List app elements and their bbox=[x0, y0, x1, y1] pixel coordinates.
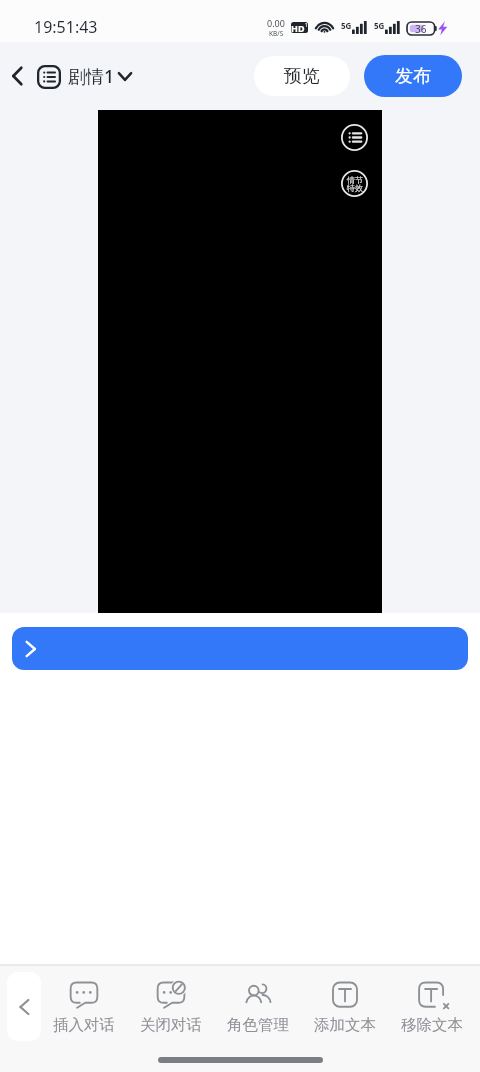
staticText: 发布 bbox=[395, 65, 431, 88]
button[interactable]: 发布 bbox=[364, 55, 462, 97]
button[interactable]: Next scene bbox=[12, 627, 468, 670]
button[interactable]: 关闭对话 bbox=[127, 982, 214, 1035]
staticText: 移除文本 bbox=[401, 1015, 463, 1035]
staticText: 情节 特效 bbox=[347, 175, 363, 193]
button[interactable]: 移除文本 bbox=[388, 982, 475, 1035]
staticText: 0.00 bbox=[267, 17, 285, 29]
button[interactable]: Scene list bbox=[341, 124, 368, 151]
staticText: 36 bbox=[415, 22, 427, 35]
button[interactable]: 剧情1 bbox=[37, 64, 132, 89]
button[interactable]: 预览 bbox=[254, 56, 350, 96]
button[interactable]: Back bbox=[3, 62, 31, 90]
staticText: 5G bbox=[374, 20, 385, 31]
staticText: 5G bbox=[341, 20, 352, 31]
staticText: 插入对话 bbox=[53, 1015, 115, 1035]
button[interactable]: Collapse toolbar bbox=[7, 972, 41, 1041]
staticText: KB/S bbox=[269, 29, 284, 38]
staticText: 剧情1 bbox=[68, 64, 115, 89]
button[interactable]: 角色管理 bbox=[214, 982, 301, 1035]
staticText: HD bbox=[291, 22, 305, 33]
staticText: 添加文本 bbox=[314, 1015, 376, 1035]
staticText: 关闭对话 bbox=[140, 1015, 202, 1035]
staticText: 19:51:43 bbox=[34, 16, 98, 38]
staticText: 1 bbox=[305, 22, 308, 29]
staticText: 角色管理 bbox=[227, 1015, 289, 1035]
button[interactable]: 插入对话 bbox=[41, 982, 127, 1035]
staticText: 预览 bbox=[284, 65, 320, 88]
button[interactable]: Effects bbox=[341, 170, 368, 197]
button[interactable]: 添加文本 bbox=[301, 982, 388, 1035]
